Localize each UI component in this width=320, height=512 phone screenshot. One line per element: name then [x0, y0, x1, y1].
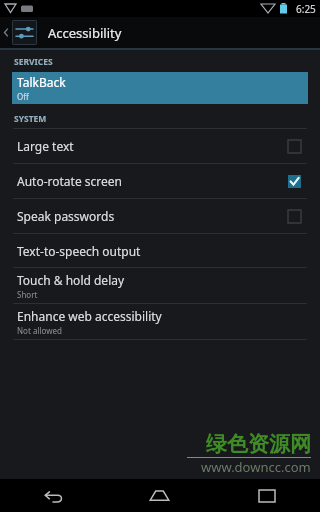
staticText: Speak passwords	[17, 208, 288, 224]
staticText: Text-to-speech output	[17, 243, 141, 259]
staticText: Short	[17, 289, 38, 300]
staticText: SYSTEM	[14, 113, 47, 125]
button[interactable]: Home	[106, 479, 213, 512]
button[interactable]: TalkBack	[12, 72, 308, 104]
staticText: TalkBack	[17, 74, 66, 90]
button[interactable]: Auto-rotate screen	[0, 164, 320, 198]
button[interactable]: Touch & hold delay	[0, 268, 320, 303]
staticText: Large text	[17, 138, 288, 154]
staticText: www.downcc.com	[201, 458, 311, 476]
button[interactable]: Back	[0, 479, 106, 512]
button[interactable]: Recent apps	[213, 479, 320, 512]
staticText: Accessibility	[48, 24, 122, 42]
staticText: Not allowed	[17, 325, 62, 336]
button[interactable]: Enhance web accessibility	[0, 304, 320, 339]
button[interactable]: Text-to-speech output	[0, 234, 320, 267]
staticText: SERVICES	[14, 56, 53, 68]
button[interactable]: Large text	[0, 129, 320, 163]
staticText: 6:25	[296, 2, 316, 16]
staticText: Enhance web accessibility	[17, 308, 162, 324]
button[interactable]: Speak passwords	[0, 199, 320, 233]
staticText: Touch & hold delay	[17, 272, 125, 288]
button[interactable]: Navigate up	[0, 17, 39, 48]
staticText: Off	[17, 91, 29, 102]
staticText: 绿色资源网	[206, 431, 311, 457]
staticText: Auto-rotate screen	[17, 173, 288, 189]
